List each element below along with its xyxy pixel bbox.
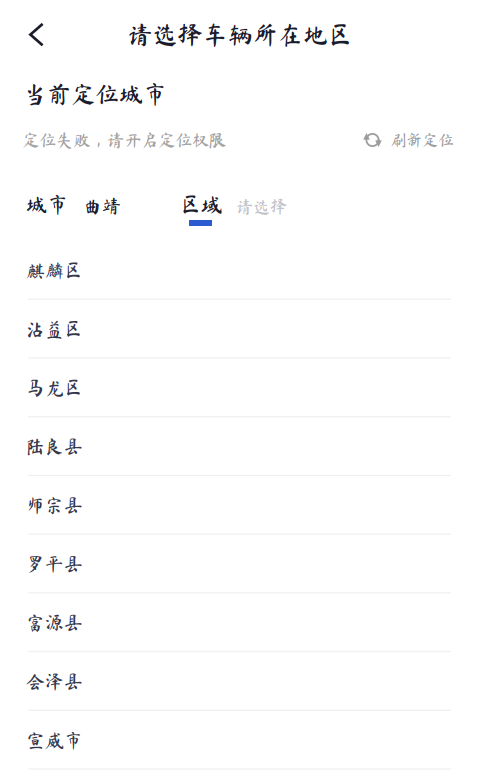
staticText: 曲靖 [83, 196, 121, 215]
button[interactable]: 陆良县 [0, 417, 480, 476]
staticText: 刷新定位 [390, 132, 454, 148]
staticText: 区域 [180, 194, 222, 215]
button[interactable]: 城市 [26, 193, 180, 227]
staticText: 富源县 [26, 613, 83, 632]
button[interactable]: 麒麟区 [0, 241, 480, 300]
staticText: 沾益区 [26, 320, 83, 338]
button[interactable]: 马龙区 [0, 358, 480, 417]
button[interactable]: 会泽县 [0, 652, 480, 711]
staticText: 定位失败，请开启定位权限 [22, 131, 226, 149]
button[interactable]: 返回 [0, 0, 88, 69]
button[interactable]: 沾益区 [0, 300, 480, 358]
staticText: 会泽县 [26, 672, 83, 691]
button[interactable]: 罗平县 [0, 535, 480, 593]
staticText: 陆良县 [26, 437, 83, 456]
staticText: 宣威市 [26, 731, 83, 749]
button[interactable]: 富源县 [0, 593, 480, 652]
staticText: 请选择 [236, 198, 287, 215]
staticText: 请选择车辆所在地区 [127, 22, 352, 47]
staticText: 马龙区 [26, 378, 83, 397]
staticText: 城市 [26, 194, 68, 215]
staticText: 师宗县 [26, 496, 83, 514]
staticText: 罗平县 [26, 555, 83, 573]
button[interactable]: 刷新定位 [363, 120, 454, 160]
button[interactable]: 师宗县 [0, 476, 480, 535]
staticText: 当前定位城市 [23, 82, 167, 106]
button[interactable]: 区域 [180, 193, 336, 227]
button[interactable]: 宣威市 [0, 711, 480, 769]
staticText: 麒麟区 [26, 261, 83, 280]
